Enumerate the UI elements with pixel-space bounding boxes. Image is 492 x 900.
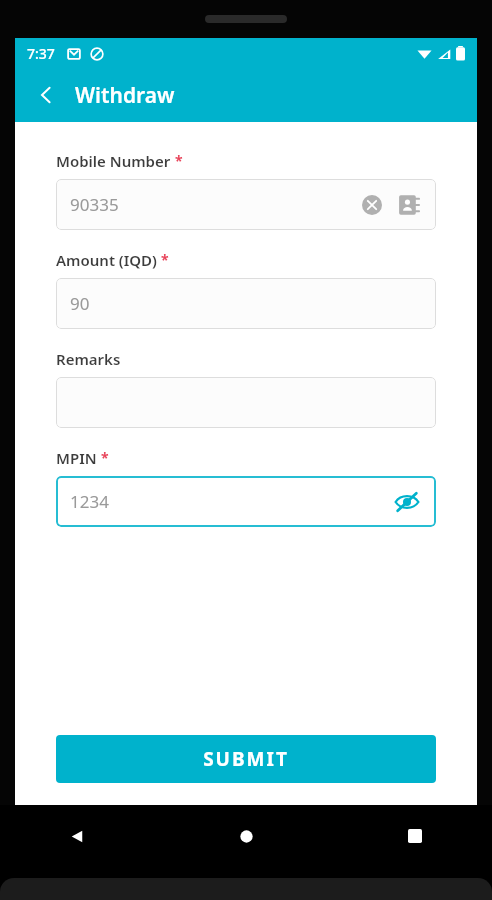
staticText: * [161,250,169,269]
staticText: SUBMIT [203,746,289,772]
staticText: Amount (IQD) [56,250,157,270]
staticText: 1234 [70,490,109,513]
button[interactable]: Home [229,819,263,853]
staticText: MPIN [56,448,97,468]
staticText: Mobile Number [56,151,171,171]
staticText: Withdraw [75,81,175,110]
button[interactable]: 90335 [56,179,436,230]
button[interactable] [56,377,436,428]
staticText: 7:37 [27,44,55,63]
staticText: * [101,448,109,467]
button[interactable]: Recent apps [398,819,432,853]
staticText: 90 [70,292,90,315]
button[interactable]: SUBMIT [56,735,436,783]
staticText: * [175,151,183,170]
button[interactable]: 1234 [56,476,436,527]
button[interactable]: Back [29,78,63,112]
button[interactable]: Pick from contacts [396,192,422,218]
button[interactable]: 90 [56,278,436,329]
staticText: Remarks [56,349,121,369]
button[interactable]: Toggle MPIN visibility [392,487,422,517]
staticText: 90335 [70,193,119,216]
button[interactable]: Clear text [360,193,384,217]
button[interactable]: Back [60,819,94,853]
